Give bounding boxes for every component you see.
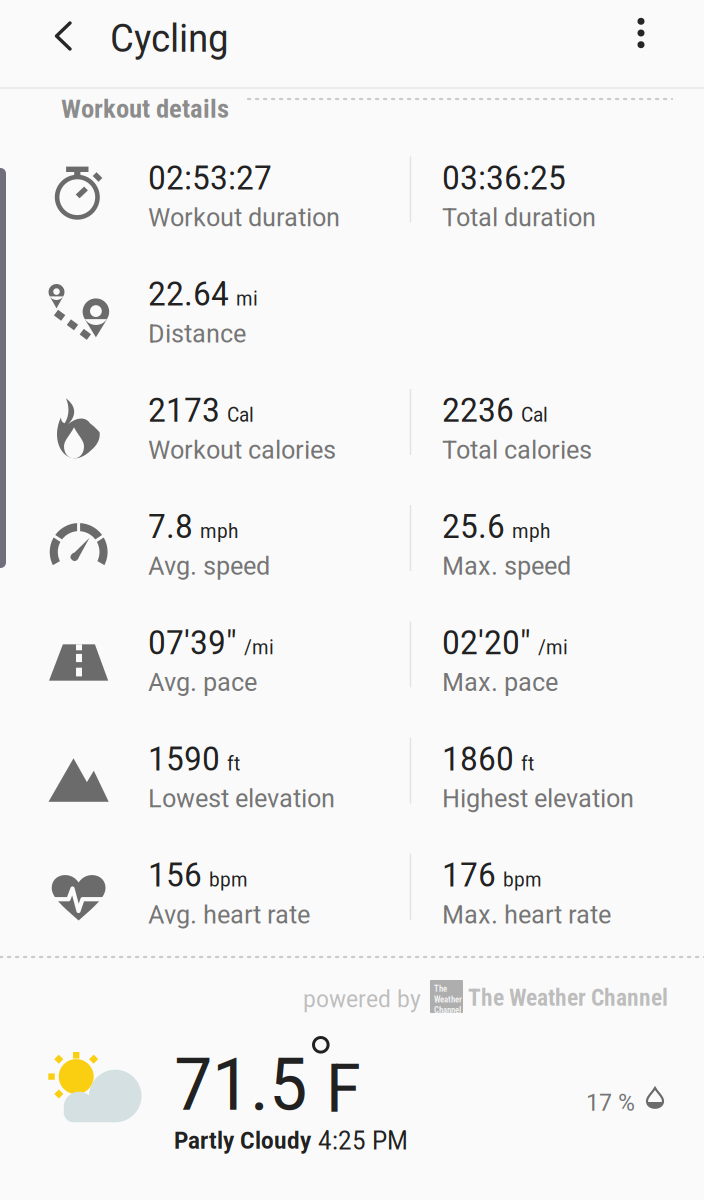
staticText: Avg. pace: [148, 666, 257, 698]
staticText: 71.5: [174, 1043, 307, 1127]
button[interactable]: More options: [610, 2, 672, 64]
staticText: Distance: [148, 318, 246, 349]
staticText: The: [434, 984, 447, 994]
staticText: Max. speed: [442, 550, 571, 581]
staticText: 25.6: [442, 507, 505, 546]
staticText: /mi: [244, 636, 274, 659]
staticText: 17 %: [586, 1088, 635, 1117]
staticText: F: [326, 1050, 361, 1128]
staticText: 2236: [442, 391, 514, 430]
staticText: Workout calories: [148, 434, 336, 465]
staticText: 03:36:25: [442, 158, 566, 198]
staticText: 156: [148, 856, 202, 895]
staticText: Partly Cloudy: [174, 1127, 311, 1155]
staticText: 7.8: [148, 507, 193, 546]
staticText: ft: [227, 752, 240, 775]
staticText: Avg. heart rate: [148, 899, 310, 930]
staticText: powered by: [303, 985, 421, 1013]
staticText: bpm: [503, 868, 542, 891]
staticText: Cal: [521, 403, 548, 427]
button[interactable]: Back: [33, 0, 93, 73]
staticText: Workout details: [61, 93, 229, 124]
staticText: 1860: [442, 739, 514, 779]
staticText: Weather: [434, 994, 462, 1005]
staticText: Cycling: [110, 16, 229, 61]
staticText: Total duration: [442, 201, 596, 233]
staticText: ft: [521, 752, 534, 775]
staticText: mi: [236, 287, 258, 310]
staticText: Lowest elevation: [148, 782, 335, 814]
staticText: 2173: [148, 391, 220, 430]
staticText: Workout duration: [148, 201, 340, 233]
staticText: 176: [442, 856, 496, 895]
staticText: Total calories: [442, 434, 592, 465]
staticText: 02'20": [442, 623, 531, 662]
staticText: Channel: [434, 1005, 461, 1015]
staticText: bpm: [209, 868, 248, 891]
staticText: The Weather Channel: [468, 984, 668, 1011]
staticText: mph: [200, 519, 238, 543]
staticText: Max. pace: [442, 666, 558, 698]
staticText: Max. heart rate: [442, 899, 611, 930]
staticText: /mi: [538, 636, 568, 659]
staticText: Cal: [227, 403, 254, 427]
staticText: mph: [512, 519, 550, 543]
staticText: 1590: [148, 739, 220, 779]
staticText: 4:25 PM: [318, 1126, 408, 1156]
staticText: Highest elevation: [442, 782, 634, 814]
staticText: 22.64: [148, 275, 229, 314]
staticText: 07'39": [148, 623, 237, 662]
staticText: Avg. speed: [148, 550, 270, 581]
staticText: 02:53:27: [148, 158, 272, 198]
